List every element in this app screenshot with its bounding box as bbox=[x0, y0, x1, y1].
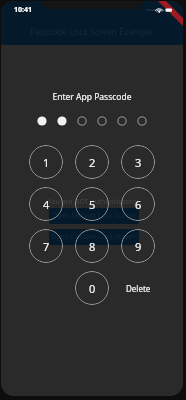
staticText: Delete bbox=[126, 283, 151, 294]
button[interactable]: 5 bbox=[75, 187, 109, 221]
staticText: Open Default Lock Screen bbox=[52, 211, 137, 221]
staticText: 10:41 bbox=[14, 5, 32, 15]
button[interactable]: 1 bbox=[29, 145, 63, 179]
button[interactable]: 2 bbox=[75, 145, 109, 179]
staticText: Enter App Passcode bbox=[1, 91, 183, 103]
button[interactable]: Open Default Lock Screen bbox=[49, 208, 139, 224]
staticText: 1 bbox=[43, 155, 50, 170]
button[interactable]: Delete bbox=[121, 271, 155, 305]
button[interactable]: 0 bbox=[75, 271, 109, 305]
staticText: 0 bbox=[89, 281, 96, 296]
staticText: 9 bbox=[135, 239, 142, 254]
staticText: 4 bbox=[43, 197, 50, 212]
button[interactable]: 3 bbox=[121, 145, 155, 179]
staticText: 7 bbox=[43, 239, 50, 254]
button[interactable]: 6 bbox=[121, 187, 155, 221]
button[interactable]: Open Custom Lock Screen bbox=[49, 229, 139, 245]
button[interactable]: 7 bbox=[29, 229, 63, 263]
staticText: 6 bbox=[135, 197, 142, 212]
other: Debug banner bbox=[151, 1, 183, 33]
staticText: 2 bbox=[89, 155, 96, 170]
button[interactable]: 4 bbox=[29, 187, 63, 221]
staticText: You are NOT authenticated bbox=[1, 197, 183, 207]
staticText: 5 bbox=[89, 197, 96, 212]
button[interactable]: 8 bbox=[75, 229, 109, 263]
staticText: Open Custom Lock Screen bbox=[51, 232, 138, 242]
button[interactable]: 9 bbox=[121, 229, 155, 263]
staticText: 3 bbox=[135, 155, 142, 170]
other: Signal, wifi and battery status bbox=[146, 5, 174, 15]
staticText: Passcode Lock Screen Example bbox=[30, 26, 154, 38]
staticText: 8 bbox=[89, 239, 96, 254]
